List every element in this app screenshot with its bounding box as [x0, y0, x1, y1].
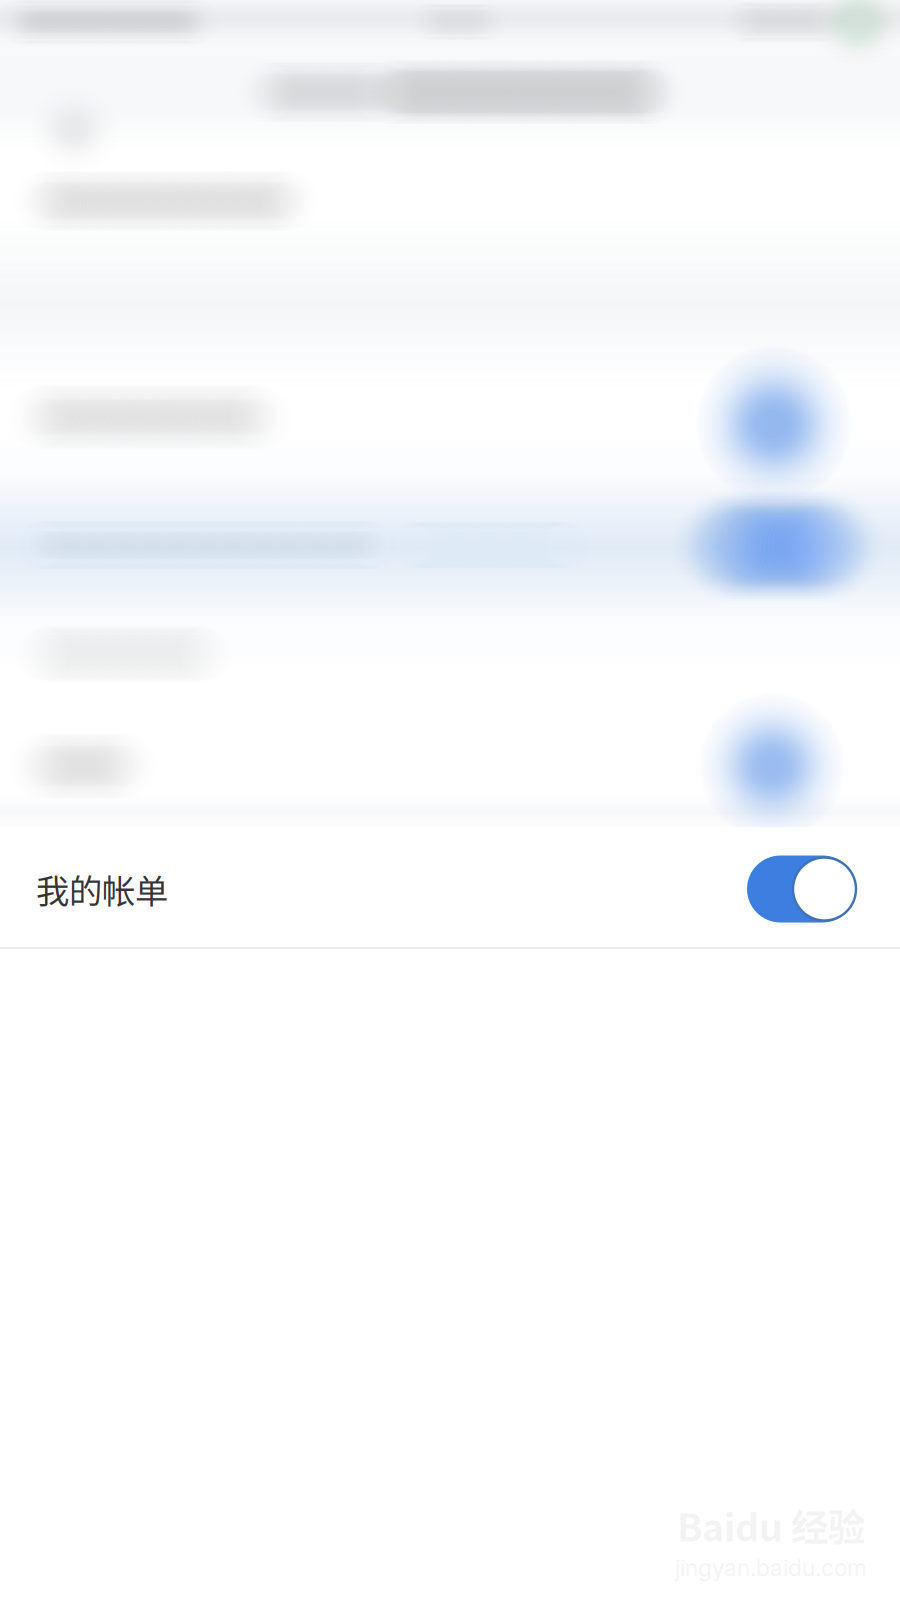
staticText: 我的帐单	[36, 865, 168, 913]
button[interactable]: 我的帐单	[0, 828, 900, 950]
staticText: Baidu 经验	[677, 1498, 865, 1552]
staticText: jingyan.baidu.com	[675, 1554, 867, 1582]
button[interactable]: Back	[12, 40, 112, 140]
